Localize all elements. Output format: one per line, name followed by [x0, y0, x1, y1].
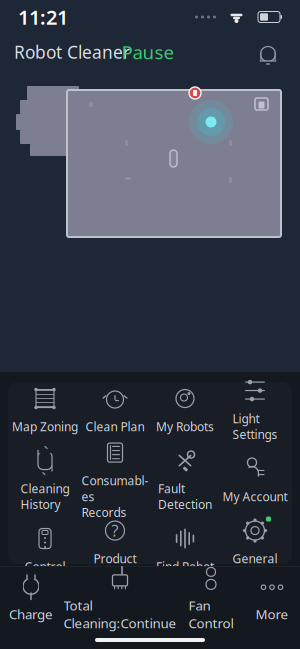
button[interactable]: Fan Control: [178, 575, 244, 623]
staticText: More: [255, 605, 288, 623]
button[interactable]: Charge: [0, 575, 62, 623]
staticText: Cleaning History: [20, 481, 69, 512]
button[interactable]: ?: [80, 524, 150, 576]
button[interactable]: Light Settings: [220, 384, 290, 436]
staticText: Robot Cleaner: [14, 40, 130, 63]
staticText: Consumables Records: [81, 473, 148, 520]
staticText: Control: [24, 558, 65, 574]
staticText: Fan Control: [188, 596, 233, 632]
button[interactable]: Cleaning History: [10, 454, 80, 506]
staticText: ?: [111, 520, 118, 541]
staticText: Fault Detection: [158, 481, 212, 512]
button[interactable]: Map Zoning: [10, 384, 80, 436]
staticText: Light Settings: [232, 411, 277, 442]
button[interactable]: My Robots: [150, 384, 220, 436]
staticText: Pause: [121, 40, 174, 64]
staticText: Clean Plan: [85, 418, 144, 434]
button[interactable]: Consumables Records: [80, 454, 150, 506]
staticText: My Account: [222, 488, 287, 504]
staticText: 11:21: [18, 4, 68, 30]
button[interactable]: Total Cleaning:Continue: [62, 575, 178, 623]
button[interactable]: Find Robot: [150, 524, 220, 576]
button[interactable]: Control: [10, 524, 80, 576]
staticText: Find Robot: [156, 558, 214, 574]
button[interactable]: Fault Detection: [150, 454, 220, 506]
button[interactable]: Clean Plan: [80, 384, 150, 436]
button[interactable]: More: [244, 575, 300, 623]
button[interactable]: My Account: [220, 454, 290, 506]
staticText: Total Cleaning:Continue: [63, 596, 176, 632]
staticText: My Robots: [156, 418, 214, 434]
staticText: Charge: [9, 605, 53, 623]
staticText: General Settings: [232, 551, 277, 582]
staticText: Map Zoning: [12, 418, 78, 434]
staticText: Product Guide: [93, 551, 136, 582]
button[interactable]: Notifications: [250, 34, 286, 70]
button[interactable]: General Settings: [220, 524, 290, 576]
